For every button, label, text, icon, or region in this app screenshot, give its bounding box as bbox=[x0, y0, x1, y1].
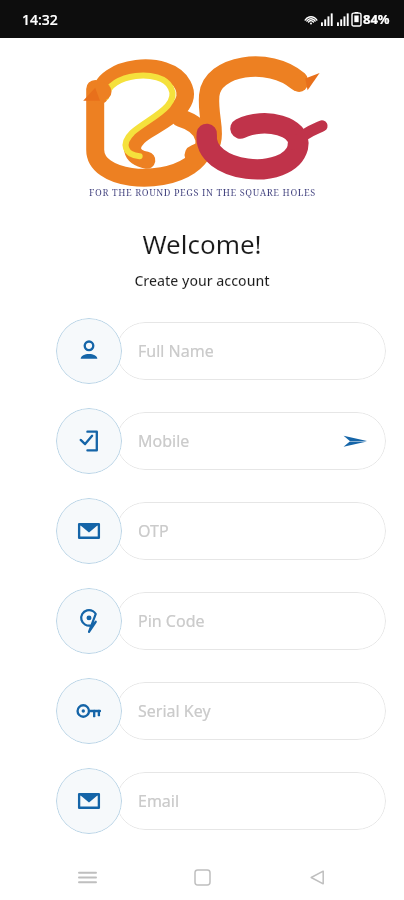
button[interactable]: Serial Key bbox=[116, 682, 386, 740]
staticText: Serial Key bbox=[138, 700, 211, 722]
staticText: Create your account bbox=[134, 271, 270, 290]
staticText: Email bbox=[138, 790, 180, 812]
button[interactable]: Email bbox=[116, 772, 386, 830]
staticText: Welcome! bbox=[142, 226, 262, 261]
button[interactable]: Back bbox=[289, 854, 345, 900]
button[interactable]: OTP bbox=[116, 502, 386, 560]
staticText: OTP bbox=[138, 520, 169, 542]
button[interactable]: Mobile bbox=[56, 408, 122, 474]
button[interactable]: Full Name bbox=[56, 318, 122, 384]
staticText: Pin Code bbox=[138, 610, 205, 632]
button[interactable]: Serial Key bbox=[56, 678, 122, 744]
button[interactable]: OTP bbox=[56, 498, 122, 564]
staticText: 14:32 bbox=[22, 10, 58, 29]
button[interactable]: Home bbox=[174, 854, 230, 900]
staticText: Mobile bbox=[138, 430, 190, 452]
button[interactable]: Pin Code bbox=[56, 588, 122, 654]
button[interactable]: Email bbox=[56, 768, 122, 834]
button[interactable]: Full Name bbox=[116, 322, 386, 380]
button[interactable]: Mobile bbox=[116, 412, 386, 470]
button[interactable]: Recent apps bbox=[59, 854, 115, 900]
staticText: FOR THE ROUND PEGS IN THE SQUARE HOLES bbox=[89, 186, 316, 198]
button[interactable]: Pin Code bbox=[116, 592, 386, 650]
staticText: 84% bbox=[363, 10, 390, 28]
staticText: Full Name bbox=[138, 340, 214, 362]
button[interactable]: Send OTP bbox=[338, 424, 372, 458]
